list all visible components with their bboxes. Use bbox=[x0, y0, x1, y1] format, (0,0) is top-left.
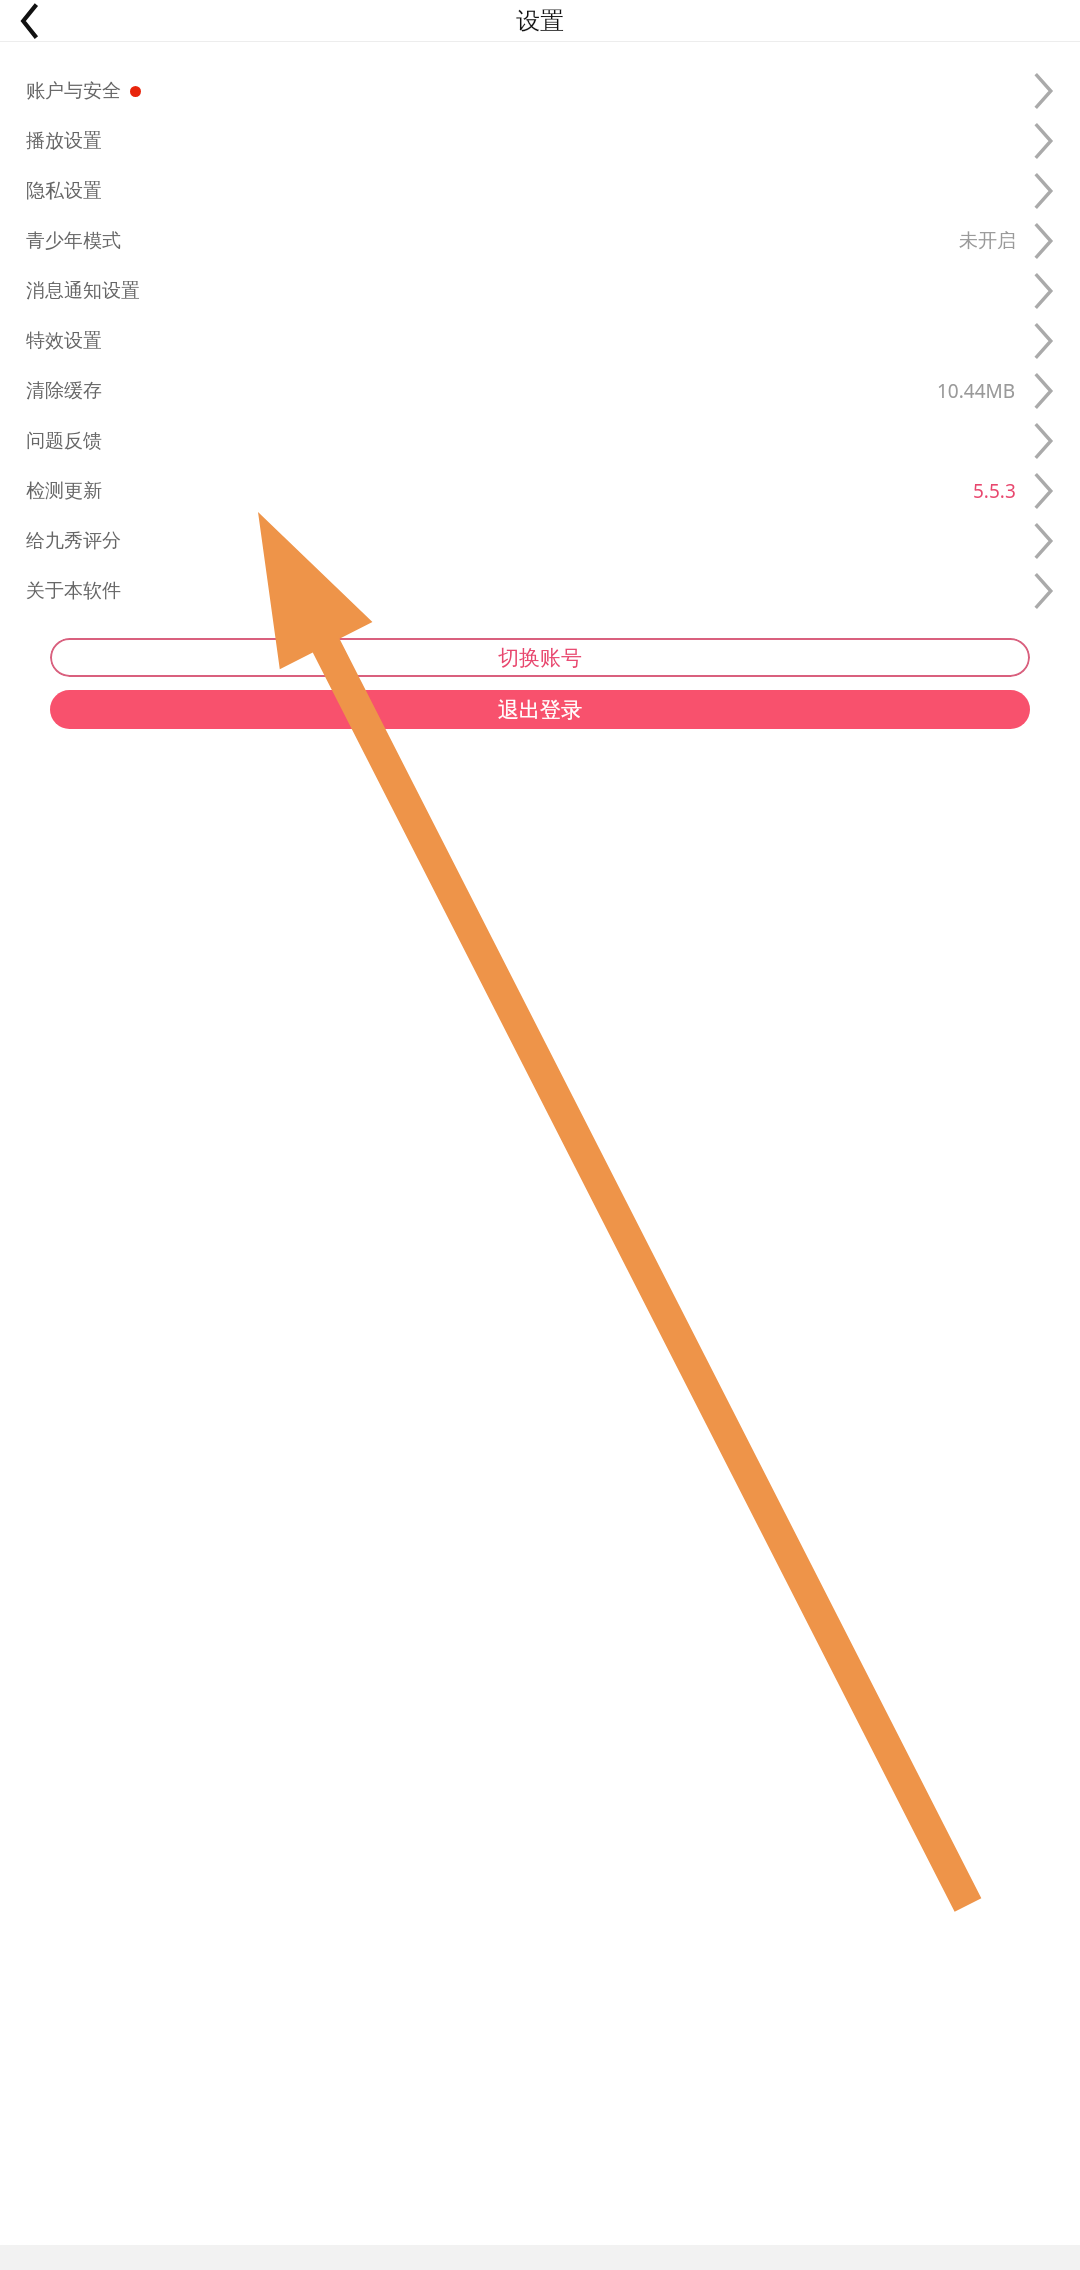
staticText: 5.5.3 bbox=[973, 478, 1016, 504]
staticText: 关于本软件 bbox=[26, 579, 121, 603]
button[interactable]: 关于本软件 bbox=[0, 566, 1080, 616]
button[interactable]: 青少年模式 bbox=[0, 216, 1080, 266]
button[interactable]: 隐私设置 bbox=[0, 166, 1080, 216]
staticText: 给九秀评分 bbox=[26, 529, 121, 553]
staticText: 青少年模式 bbox=[26, 229, 121, 253]
button[interactable]: Back bbox=[4, 0, 56, 41]
button[interactable]: 切换账号 bbox=[50, 638, 1030, 677]
staticText: 未开启 bbox=[959, 229, 1016, 253]
staticText: 播放设置 bbox=[26, 129, 102, 153]
staticText: 问题反馈 bbox=[26, 429, 102, 453]
staticText: 退出登录 bbox=[498, 697, 582, 723]
staticText: 切换账号 bbox=[498, 645, 582, 671]
staticText: 10.44MB bbox=[937, 378, 1016, 404]
button[interactable]: 播放设置 bbox=[0, 116, 1080, 166]
button[interactable]: 给九秀评分 bbox=[0, 516, 1080, 566]
staticText: 检测更新 bbox=[26, 479, 102, 503]
staticText: 特效设置 bbox=[26, 329, 102, 353]
button[interactable]: 清除缓存 bbox=[0, 366, 1080, 416]
button[interactable]: 消息通知设置 bbox=[0, 266, 1080, 316]
staticText: 账户与安全 bbox=[26, 79, 121, 103]
button[interactable]: 退出登录 bbox=[50, 690, 1030, 729]
button[interactable]: 账户与安全 bbox=[0, 66, 1080, 116]
staticText: 清除缓存 bbox=[26, 379, 102, 403]
button[interactable]: 检测更新 bbox=[0, 466, 1080, 516]
staticText: 设置 bbox=[516, 6, 564, 36]
staticText: 消息通知设置 bbox=[26, 279, 140, 303]
button[interactable]: 问题反馈 bbox=[0, 416, 1080, 466]
button[interactable]: 特效设置 bbox=[0, 316, 1080, 366]
staticText: 隐私设置 bbox=[26, 179, 102, 203]
